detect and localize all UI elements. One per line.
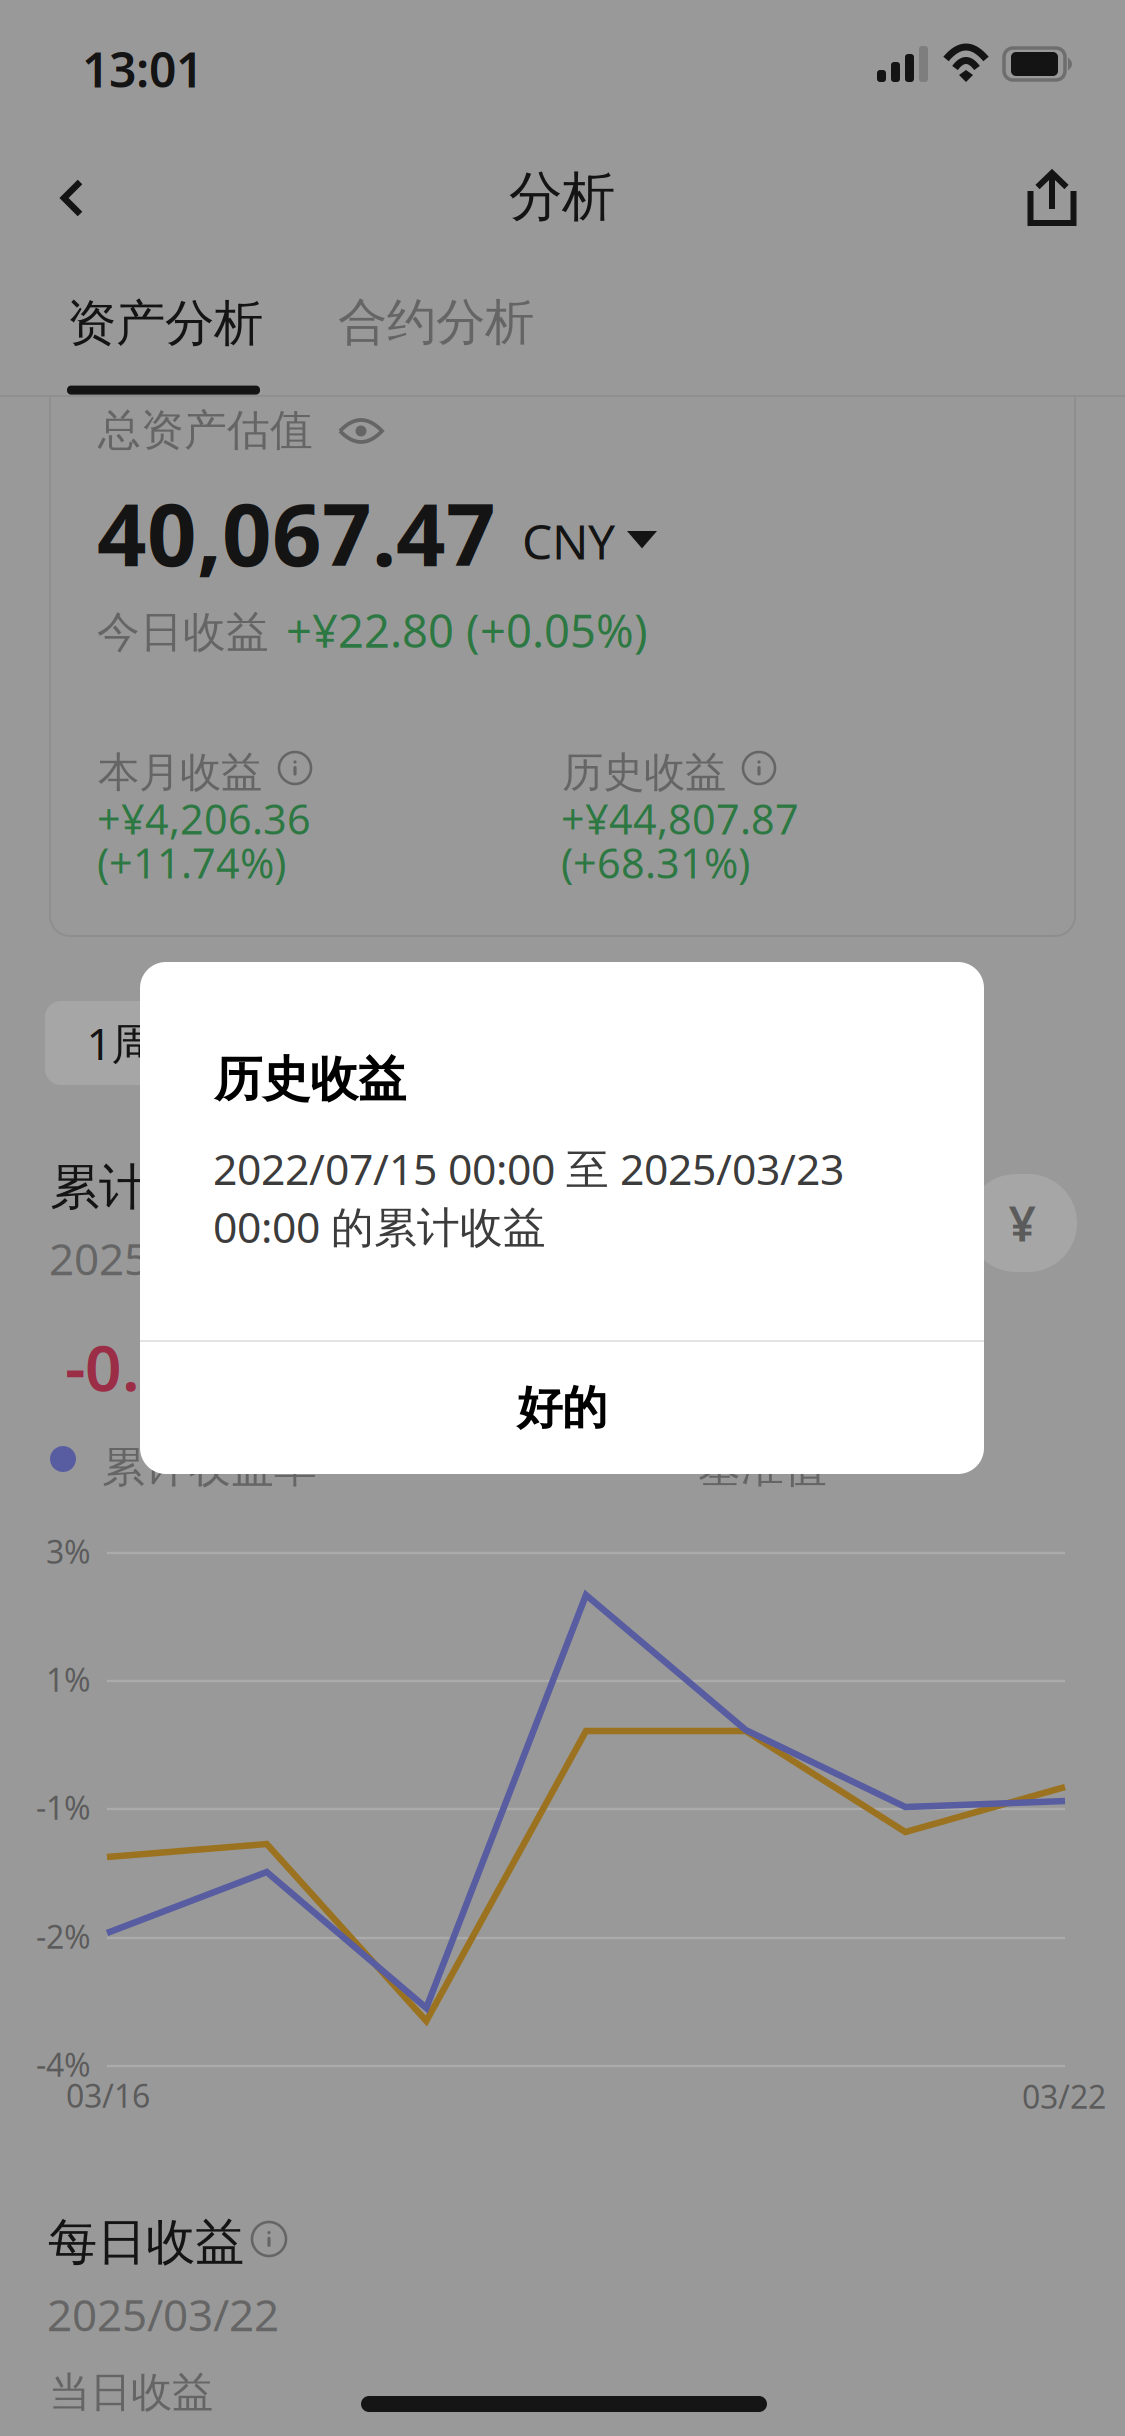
button[interactable]: Back <box>39 157 105 239</box>
staticText: 00:00 的累计收益 <box>213 1198 546 1255</box>
staticText: -4% <box>36 2043 91 2085</box>
staticText: 3% <box>46 1530 91 1572</box>
staticText: ¥ <box>1008 1191 1035 1255</box>
staticText: 合约分析 <box>338 292 534 353</box>
staticText: 1% <box>46 1658 91 1700</box>
staticText: 分析 <box>509 164 615 229</box>
staticText: -0.12% <box>65 1324 270 1409</box>
staticText: +¥44,807.87 <box>561 791 799 846</box>
staticText: 资产分析 <box>67 293 263 354</box>
staticText: -1% <box>36 1786 91 1828</box>
button[interactable]: 好的 <box>140 1342 984 1474</box>
staticText: CNY <box>522 509 615 573</box>
staticText: 历史收益 <box>562 747 726 798</box>
staticText: (+11.74%) <box>97 835 286 890</box>
staticText: 累计收益率 <box>102 1441 317 1493</box>
staticText: 总资产估值 <box>98 404 313 456</box>
staticText: 03/16 <box>66 2074 150 2116</box>
staticText: 03/22 <box>1022 2075 1106 2117</box>
staticText: 好的 <box>517 1380 607 1436</box>
staticText: 2025/03/22 <box>49 1229 281 1287</box>
staticText: 今日收益 <box>97 606 269 658</box>
button[interactable]: 1周 <box>45 1001 197 1085</box>
staticText: 历史收益 <box>214 1050 406 1109</box>
button[interactable]: ¥ <box>967 1174 1077 1272</box>
staticText: 2025/03/22 <box>47 2285 279 2343</box>
staticText: 当日收益 <box>49 2367 213 2418</box>
staticText: 2022/07/15 00:00 至 2025/03/23 <box>213 1140 844 1197</box>
staticText: 累计收益率 <box>50 1157 295 1218</box>
staticText: -2% <box>36 1915 91 1957</box>
staticText: 每日收益 <box>48 2212 244 2273</box>
staticText: +¥4,206.36 <box>97 791 311 846</box>
staticText: 40,067.47 <box>97 475 496 590</box>
staticText: 基准值 <box>698 1441 827 1493</box>
staticText: 本月收益 <box>98 747 262 798</box>
staticText: 13:01 <box>82 37 203 101</box>
button[interactable]: 合约分析 <box>338 292 534 380</box>
staticText: 1周 <box>86 1014 155 1072</box>
staticText: +¥22.80 (+0.05%) <box>286 600 648 660</box>
staticText: (+68.31%) <box>561 835 750 890</box>
button[interactable]: 资产分析 <box>67 293 263 395</box>
button[interactable]: Share <box>1012 157 1092 239</box>
